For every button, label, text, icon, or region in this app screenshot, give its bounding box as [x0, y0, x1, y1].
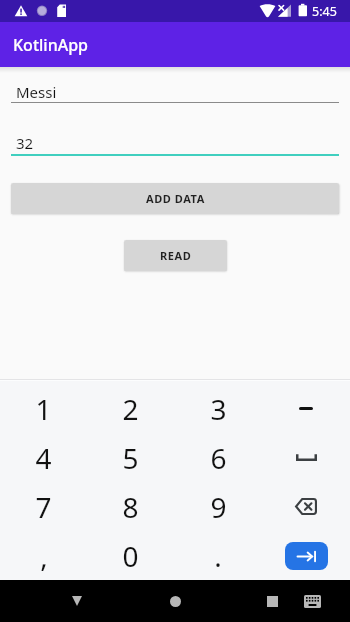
button[interactable]: ADD DATA [11, 183, 339, 214]
button[interactable]: enter [262, 531, 350, 580]
staticText: Messi [16, 82, 57, 102]
button[interactable]: back [262, 482, 350, 531]
button[interactable]: Switch keyboard [294, 580, 330, 622]
button[interactable]: Home [153, 580, 197, 622]
staticText: 8 [122, 488, 139, 526]
staticText: 0 [122, 537, 139, 575]
button[interactable]: 32 [11, 133, 339, 156]
staticText: 4 [35, 439, 52, 477]
button[interactable]: . [174, 531, 262, 580]
staticText: , [40, 537, 48, 575]
button[interactable]: 9 [174, 482, 262, 531]
button[interactable]: 8 [87, 482, 174, 531]
staticText: 5:45 [312, 3, 337, 20]
button[interactable]: 2 [87, 384, 174, 433]
staticText: 3 [210, 390, 227, 428]
staticText: 1 [35, 390, 52, 428]
button[interactable]: 3 [174, 384, 262, 433]
button[interactable]: 4 [0, 433, 87, 482]
button[interactable]: Messi [11, 82, 339, 103]
staticText: 32 [16, 133, 34, 153]
button[interactable]: 7 [0, 482, 87, 531]
button[interactable]: Back [55, 580, 99, 622]
button[interactable]: minus [262, 384, 350, 433]
button[interactable]: 0 [87, 531, 174, 580]
staticText: 7 [35, 488, 52, 526]
button[interactable]: , [0, 531, 87, 580]
staticText: 2 [122, 390, 139, 428]
button[interactable]: space [262, 433, 350, 482]
staticText: 9 [210, 488, 227, 526]
staticText: . [214, 537, 222, 575]
staticText: ADD DATA [146, 191, 205, 206]
button[interactable]: 1 [0, 384, 87, 433]
staticText: READ [160, 248, 192, 263]
button[interactable]: Recent apps [250, 580, 294, 622]
button[interactable]: READ [124, 240, 227, 271]
button[interactable]: 6 [174, 433, 262, 482]
button[interactable]: 5 [87, 433, 174, 482]
staticText: KotlinApp [13, 34, 89, 56]
staticText: 5 [122, 439, 139, 477]
staticText: 6 [210, 439, 227, 477]
